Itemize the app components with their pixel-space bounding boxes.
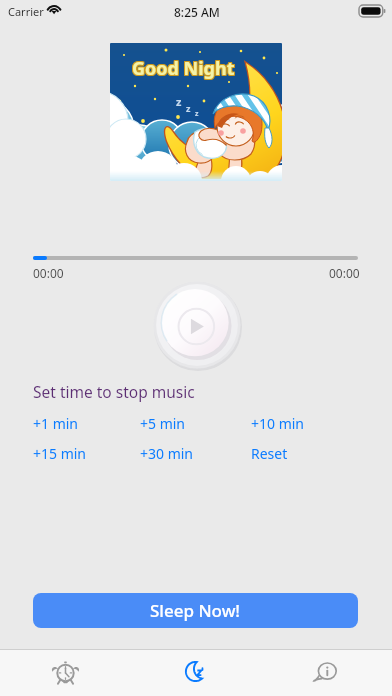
staticText: Reset: [251, 444, 288, 463]
button[interactable]: +10 min: [251, 414, 305, 433]
staticText: +15 min: [33, 444, 87, 463]
staticText: +1 min: [33, 414, 79, 433]
staticText: 8:25 AM: [174, 4, 220, 20]
staticText: Good Night: [133, 55, 236, 80]
button[interactable]: +5 min: [140, 414, 186, 433]
staticText: z: [176, 94, 182, 109]
button[interactable]: +1 min: [33, 414, 79, 433]
staticText: Carrier: [8, 4, 44, 19]
staticText: Good Night: [131, 57, 234, 82]
button[interactable]: Sleep Now!: [33, 593, 358, 628]
button[interactable]: Sleep: [130, 650, 261, 696]
button[interactable]: +30 min: [140, 444, 194, 463]
staticText: Sleep Now!: [150, 599, 241, 622]
staticText: 00:00: [33, 265, 64, 281]
staticText: Good Night: [131, 55, 234, 80]
staticText: Set time to stop music: [33, 381, 195, 402]
staticText: 00:00: [329, 265, 360, 281]
staticText: Good Night: [133, 57, 236, 82]
button[interactable]: +15 min: [33, 444, 87, 463]
staticText: Good Night: [133, 56, 236, 81]
staticText: z: [186, 102, 191, 114]
staticText: z: [195, 109, 199, 119]
staticText: +5 min: [140, 414, 186, 433]
staticText: +10 min: [251, 414, 305, 433]
button[interactable]: Reset: [251, 444, 288, 463]
button[interactable]: Info: [261, 650, 392, 696]
staticText: Good Night: [132, 57, 235, 82]
staticText: Good Night: [131, 56, 234, 81]
staticText: +30 min: [140, 444, 194, 463]
staticText: Good Night: [132, 56, 235, 81]
button[interactable]: Play: [153, 281, 241, 369]
button[interactable]: Alarm: [0, 650, 130, 696]
staticText: Good Night: [132, 55, 235, 80]
